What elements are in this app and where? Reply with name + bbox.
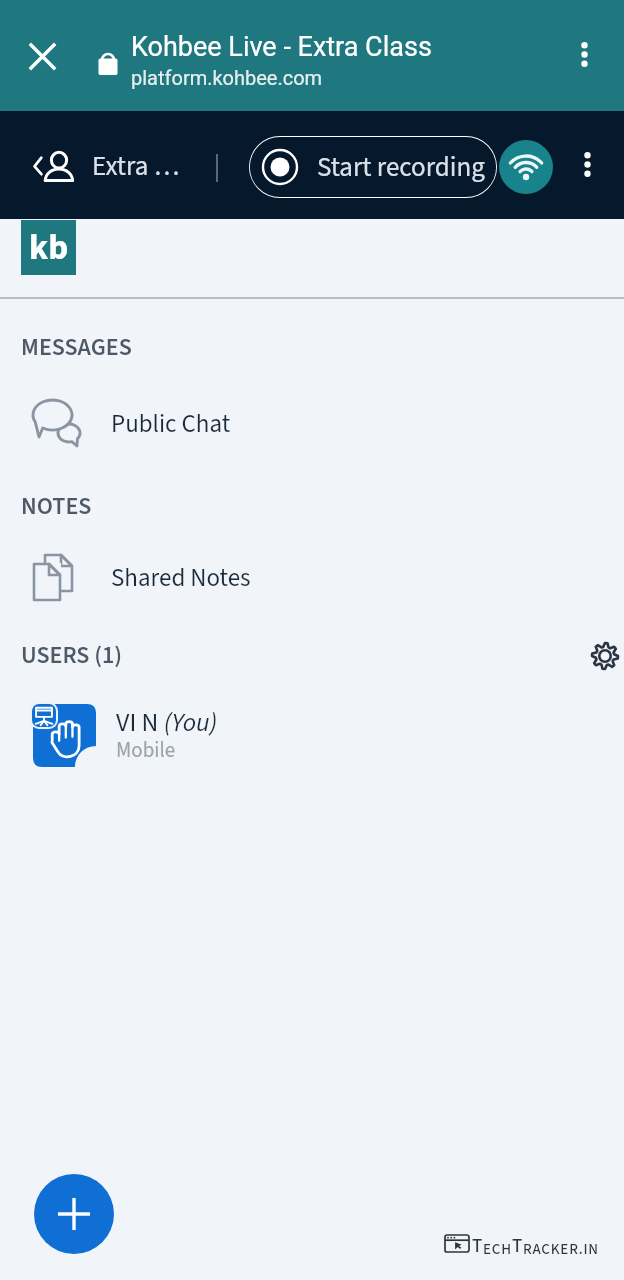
staticText: ECH	[483, 1239, 512, 1260]
staticText: kb	[29, 223, 69, 273]
button[interactable]: VI N	[0, 693, 624, 775]
button[interactable]: More options	[558, 28, 610, 80]
button[interactable]: Public Chat	[0, 394, 624, 454]
staticText: T	[472, 1233, 483, 1260]
staticText: T	[512, 1233, 523, 1260]
staticText: Mobile	[116, 735, 176, 765]
button[interactable]: Close	[13, 27, 71, 85]
staticText: Extra …	[92, 147, 180, 185]
staticText: platform.kohbee.com	[131, 66, 323, 89]
staticText: NOTES	[21, 489, 92, 523]
button[interactable]: Add	[34, 1174, 114, 1254]
staticText: (You)	[164, 704, 218, 741]
button[interactable]: Settings	[584, 635, 624, 677]
button[interactable]: Shared Notes	[0, 548, 624, 608]
staticText: Public Chat	[111, 406, 231, 442]
button[interactable]: Users list	[22, 129, 202, 201]
staticText: Start recording	[317, 148, 485, 186]
button[interactable]: Options	[562, 139, 612, 189]
staticText: VI N	[116, 704, 164, 741]
button[interactable]: Start recording	[249, 136, 497, 198]
staticText: USERS (1)	[21, 638, 123, 672]
staticText: Shared Notes	[111, 560, 251, 596]
button[interactable]: Connection status	[499, 140, 553, 194]
staticText: MESSAGES	[21, 330, 132, 364]
staticText: Kohbee Live - Extra Class	[131, 31, 432, 63]
staticText: RACKER.IN	[523, 1239, 599, 1260]
